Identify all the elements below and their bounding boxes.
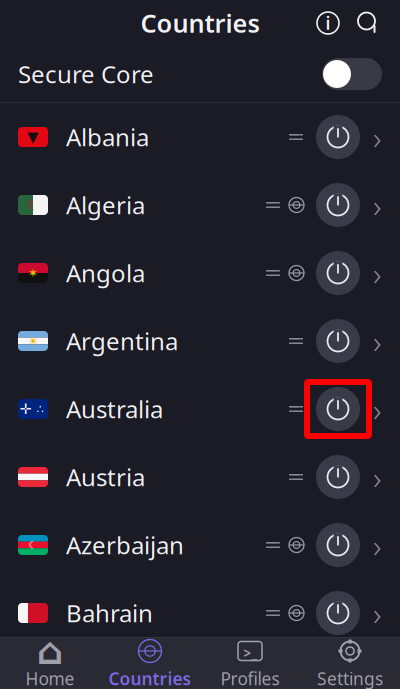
staticText: ☾ xyxy=(27,197,39,212)
staticText: ☾ xyxy=(28,539,38,551)
staticText: Algeria xyxy=(66,189,145,221)
button[interactable]: Information xyxy=(308,3,348,43)
button[interactable]: >_ xyxy=(200,631,300,689)
staticText: › xyxy=(373,592,381,634)
staticText: Settings xyxy=(317,667,383,689)
staticText: › xyxy=(373,388,381,430)
staticText: ✶ xyxy=(28,266,38,280)
staticText: › xyxy=(373,252,381,294)
button[interactable]: Search xyxy=(348,3,388,43)
staticText: › xyxy=(373,320,381,362)
button[interactable]: Bahrain xyxy=(0,579,400,647)
staticText: ⌂ xyxy=(36,630,63,672)
staticText: Angola xyxy=(66,257,145,289)
button[interactable]: ☀ xyxy=(0,307,400,375)
staticText: Secure Core xyxy=(18,58,154,90)
staticText: i xyxy=(325,11,330,34)
staticText: Azerbaijan xyxy=(66,529,184,561)
button[interactable]: ☾ xyxy=(0,511,400,579)
button[interactable]: Secure Core toggle xyxy=(322,58,382,90)
staticText: Argentina xyxy=(66,325,178,357)
staticText: › xyxy=(373,184,381,226)
button[interactable]: ✶ xyxy=(0,239,400,307)
staticText: › xyxy=(373,524,381,566)
staticText: Albania xyxy=(66,121,149,153)
staticText: ▼ xyxy=(27,129,38,145)
button[interactable]: ▼ xyxy=(0,103,400,171)
staticText: Australia xyxy=(66,393,163,425)
staticText: >_ xyxy=(243,644,256,662)
button[interactable]: ✛ xyxy=(0,375,400,443)
button[interactable]: Austria xyxy=(0,443,400,511)
staticText: Countries xyxy=(140,6,259,40)
button[interactable]: ☾ xyxy=(0,171,400,239)
staticText: › xyxy=(373,456,381,498)
staticText: Countries xyxy=(108,667,191,689)
staticText: Profiles xyxy=(220,667,279,689)
staticText: ∴ xyxy=(36,402,44,416)
staticText: ✛ xyxy=(19,401,31,417)
staticText: Home xyxy=(25,667,74,689)
button[interactable]: ⌂ xyxy=(0,631,100,689)
staticText: ☀ xyxy=(27,334,38,348)
staticText: › xyxy=(373,116,381,158)
staticText: Bahrain xyxy=(66,597,153,629)
button[interactable]: Countries xyxy=(100,631,200,689)
button[interactable]: Settings xyxy=(300,631,400,689)
staticText: Austria xyxy=(66,461,145,493)
